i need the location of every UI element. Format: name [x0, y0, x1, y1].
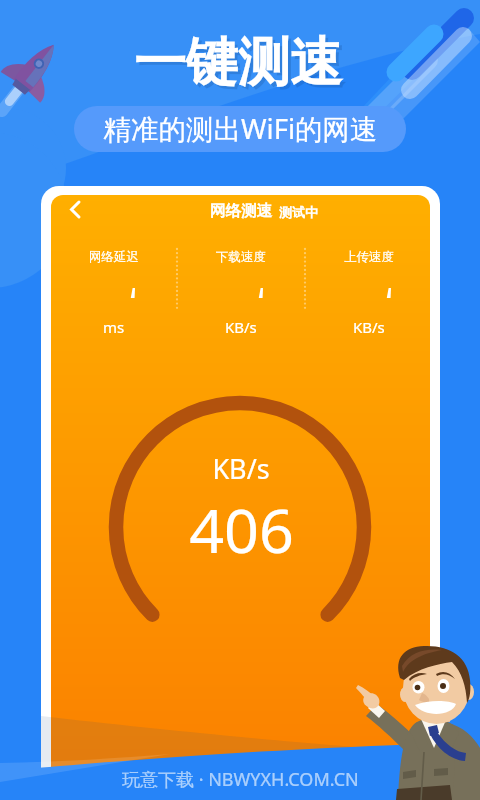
- button[interactable]: Back: [62, 196, 92, 224]
- button[interactable]: 网络延迟: [54, 249, 174, 337]
- staticText: 网络延迟: [89, 249, 139, 265]
- button[interactable]: 上传速度: [309, 249, 429, 337]
- button[interactable]: 下载速度: [181, 249, 301, 337]
- staticText: 测试中: [279, 204, 318, 220]
- staticText: 一键测速: [134, 30, 342, 96]
- staticText: 406: [189, 488, 294, 568]
- staticText: 玩意下载 · NBWYXH.COM.CN: [122, 767, 359, 792]
- staticText: KB/s: [353, 317, 385, 337]
- staticText: 一键测速: [137, 33, 345, 99]
- staticText: 精准的测出WiFi的网速: [103, 110, 378, 148]
- staticText: ms: [103, 317, 125, 337]
- button[interactable]: 精准的测出WiFi的网速: [74, 106, 406, 152]
- staticText: 上传速度: [344, 249, 394, 265]
- staticText: 下载速度: [216, 249, 266, 265]
- staticText: 网络测速: [210, 201, 272, 221]
- staticText: KB/s: [225, 317, 257, 337]
- staticText: KB/s: [212, 450, 270, 487]
